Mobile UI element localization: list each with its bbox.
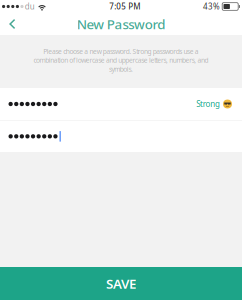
staticText: SAVE — [106, 275, 136, 292]
button[interactable]: SAVE — [0, 267, 242, 300]
staticText: 7:05 PM — [109, 1, 140, 12]
staticText: symbols. — [109, 65, 133, 74]
button[interactable]: Confirm new password — [0, 121, 242, 152]
staticText: Strong — [196, 99, 220, 109]
button[interactable]: New password — [0, 88, 242, 120]
staticText: Please choose a new password. Strong pas… — [43, 47, 199, 56]
staticText: 43% — [203, 1, 220, 12]
staticText: New Password — [77, 15, 165, 33]
staticText: combination of lowercase and uppercase l… — [33, 56, 209, 65]
button[interactable]: Back — [0, 13, 28, 35]
staticText: du — [25, 1, 35, 12]
